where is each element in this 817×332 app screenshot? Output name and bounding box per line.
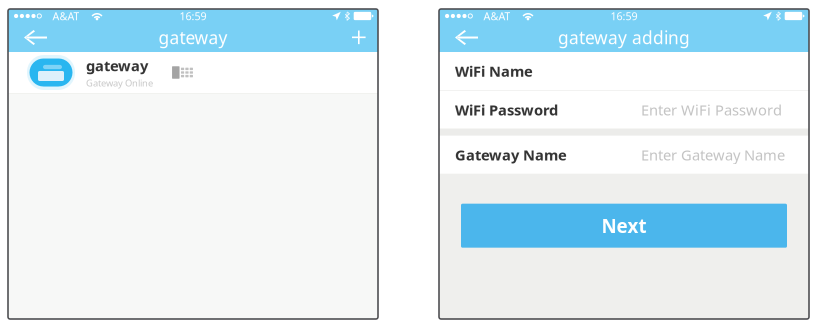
- staticText: WiFi Password: [455, 100, 558, 119]
- button[interactable]: Add gateway: [340, 23, 378, 51]
- button[interactable]: Next: [461, 204, 787, 248]
- button[interactable]: Back: [439, 23, 490, 52]
- staticText: gateway adding: [558, 26, 690, 49]
- staticText: gateway: [158, 26, 227, 49]
- staticText: WiFi Name: [455, 61, 533, 81]
- staticText: A&AT: [483, 9, 510, 23]
- staticText: Next: [601, 213, 646, 238]
- staticText: Gateway Name: [455, 145, 567, 164]
- staticText: gateway: [86, 56, 148, 75]
- staticText: Gateway Online: [86, 77, 153, 89]
- button[interactable]: gateway: [8, 52, 378, 93]
- staticText: 16:59: [610, 9, 637, 23]
- staticText: 16:59: [179, 9, 206, 23]
- staticText: Enter Gateway Name: [641, 145, 785, 164]
- button[interactable]: Back: [8, 23, 59, 52]
- staticText: Enter WiFi Password: [641, 100, 782, 119]
- staticText: A&AT: [52, 9, 79, 23]
